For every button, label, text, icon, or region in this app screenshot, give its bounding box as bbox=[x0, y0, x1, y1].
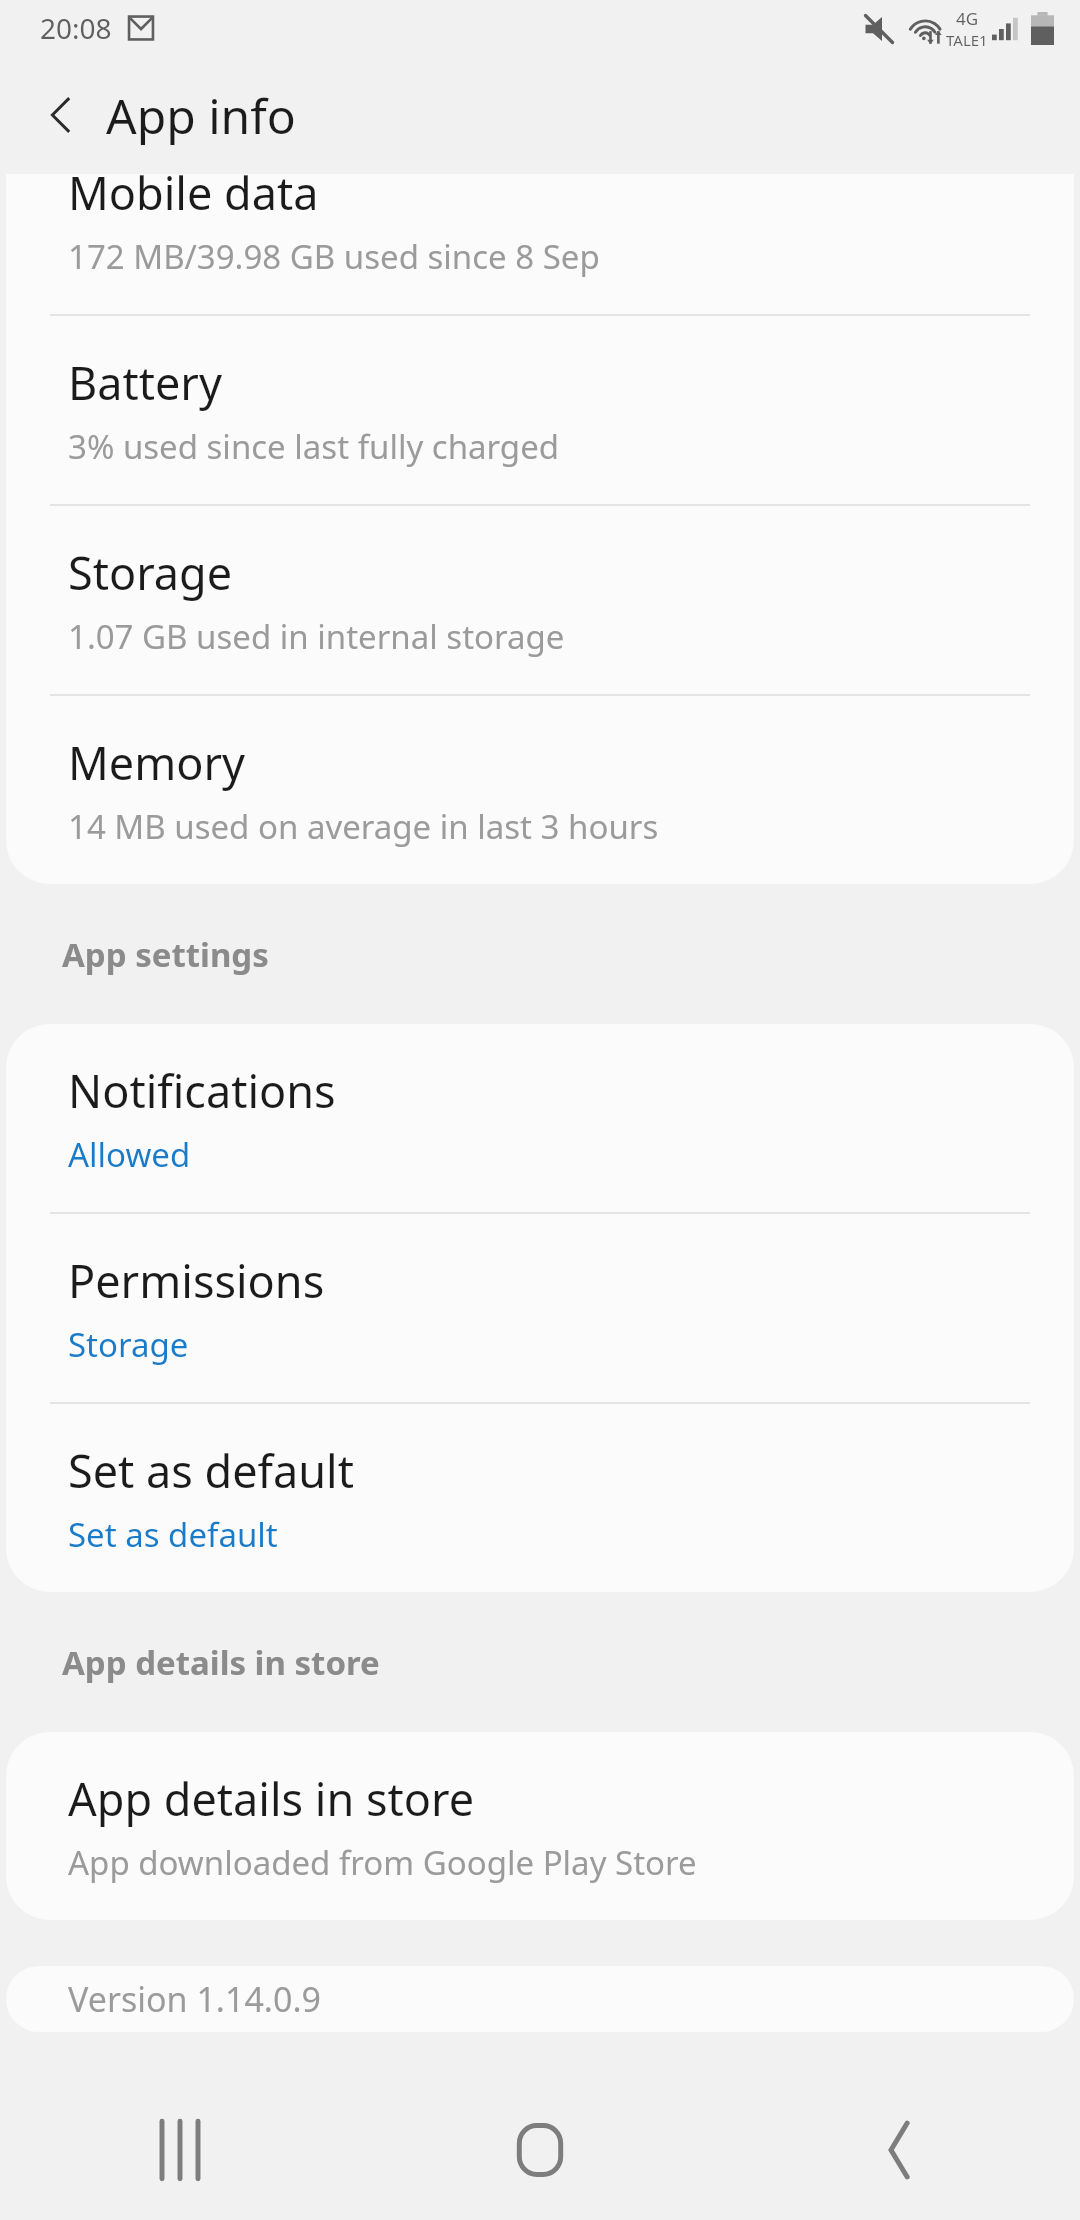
staticText: App details in store bbox=[68, 1768, 475, 1829]
button[interactable]: Back bbox=[720, 2080, 1080, 2220]
staticText: Mobile data bbox=[68, 174, 319, 223]
staticText: Notifications bbox=[68, 1060, 336, 1121]
staticText: Storage bbox=[68, 542, 233, 603]
staticText: 4G bbox=[956, 7, 979, 30]
button[interactable]: Version 1.14.0.9 bbox=[6, 1966, 1074, 2032]
staticText: 14 MB used on average in last 3 hours bbox=[68, 804, 659, 849]
staticText: 20:08 bbox=[40, 9, 112, 47]
button[interactable]: Recent apps bbox=[0, 2080, 360, 2220]
button[interactable]: Notifications bbox=[6, 1024, 1074, 1212]
button[interactable]: Back bbox=[24, 78, 98, 152]
staticText: Set as default bbox=[68, 1440, 354, 1501]
button[interactable]: Battery bbox=[6, 316, 1074, 504]
staticText: Permissions bbox=[68, 1250, 325, 1311]
button[interactable]: Mobile data bbox=[6, 174, 1074, 314]
staticText: Version 1.14.0.9 bbox=[68, 1976, 321, 2022]
staticText: TALE1 bbox=[946, 30, 988, 50]
staticText: Memory bbox=[68, 732, 246, 793]
staticText: Set as default bbox=[68, 1512, 278, 1557]
staticText: Storage bbox=[68, 1322, 189, 1367]
staticText: App downloaded from Google Play Store bbox=[68, 1840, 697, 1885]
staticText: 172 MB/39.98 GB used since 8 Sep bbox=[68, 234, 600, 279]
staticText: Battery bbox=[68, 352, 222, 413]
button[interactable]: Permissions bbox=[6, 1214, 1074, 1402]
staticText: App details in store bbox=[62, 1640, 380, 1685]
button[interactable]: Home bbox=[360, 2080, 720, 2220]
button[interactable]: Memory bbox=[6, 696, 1074, 884]
button[interactable]: App details in store bbox=[6, 1732, 1074, 1920]
staticText: Allowed bbox=[68, 1132, 191, 1177]
staticText: 1.07 GB used in internal storage bbox=[68, 614, 565, 659]
staticText: App settings bbox=[62, 932, 269, 977]
staticText: App info bbox=[106, 83, 296, 148]
button[interactable]: Storage bbox=[6, 506, 1074, 694]
button[interactable]: Set as default bbox=[6, 1404, 1074, 1592]
staticText: 3% used since last fully charged bbox=[68, 424, 560, 469]
